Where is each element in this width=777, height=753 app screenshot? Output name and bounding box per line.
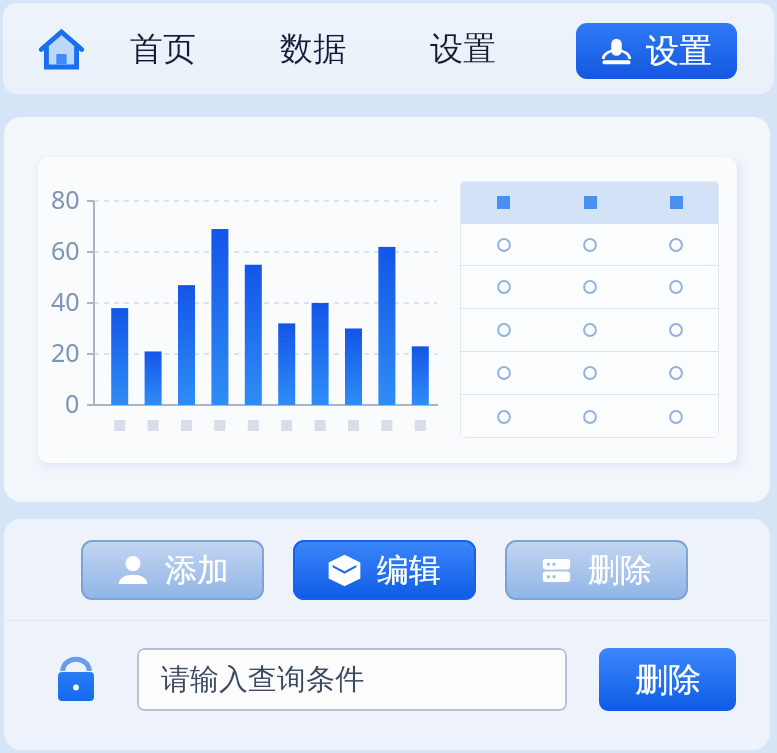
- staticText: 请输入查询条件: [161, 661, 364, 698]
- button[interactable]: 请输入查询条件: [137, 648, 567, 711]
- button[interactable]: 设置: [576, 23, 737, 79]
- staticText: 60: [51, 233, 80, 267]
- staticText: 0: [65, 386, 80, 420]
- button[interactable]: 数据: [266, 12, 360, 86]
- button[interactable]: Lock: [45, 648, 107, 710]
- staticText: 删除: [635, 659, 701, 701]
- staticText: 设置: [430, 28, 496, 70]
- staticText: 数据: [280, 28, 346, 70]
- button[interactable]: 删除: [599, 648, 736, 711]
- button[interactable]: 编辑: [293, 540, 476, 600]
- staticText: 添加: [165, 550, 229, 590]
- button[interactable]: 设置: [416, 12, 510, 86]
- staticText: 首页: [130, 28, 196, 70]
- button[interactable]: Home: [36, 24, 86, 74]
- button[interactable]: 删除: [505, 540, 688, 600]
- staticText: 编辑: [377, 550, 441, 590]
- staticText: 80: [51, 182, 80, 216]
- button[interactable]: 添加: [81, 540, 264, 600]
- button[interactable]: 首页: [116, 12, 210, 86]
- staticText: 设置: [646, 30, 712, 72]
- staticText: 删除: [588, 550, 652, 590]
- staticText: 20: [51, 335, 80, 369]
- staticText: 40: [51, 284, 80, 318]
